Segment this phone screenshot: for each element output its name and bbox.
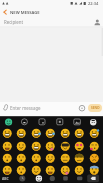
button[interactable]: Recipient (0, 17, 103, 27)
button[interactable] (58, 127, 73, 139)
button[interactable] (37, 117, 49, 128)
button[interactable] (58, 164, 73, 176)
button[interactable]: ABC (0, 174, 13, 183)
button[interactable] (14, 140, 29, 152)
button[interactable] (43, 174, 55, 183)
button[interactable] (43, 152, 58, 164)
button[interactable] (29, 164, 44, 176)
button[interactable] (87, 164, 102, 176)
button[interactable] (87, 127, 102, 139)
button[interactable] (0, 7, 10, 17)
button[interactable] (71, 117, 83, 128)
button[interactable] (1, 102, 9, 116)
button[interactable] (20, 117, 32, 128)
button[interactable] (77, 103, 87, 114)
button[interactable] (58, 140, 73, 152)
button[interactable] (0, 140, 15, 152)
button[interactable] (58, 152, 73, 164)
button[interactable]: SEND (88, 104, 102, 112)
staticText: Recipient (4, 19, 24, 25)
button[interactable] (29, 127, 44, 139)
button[interactable] (0, 164, 15, 176)
button[interactable] (14, 164, 29, 176)
button[interactable] (2, 117, 14, 128)
button[interactable] (72, 140, 87, 152)
staticText: ABC (2, 176, 9, 181)
button[interactable] (72, 152, 87, 164)
button[interactable]: Enter message (9, 102, 77, 116)
button[interactable] (72, 164, 87, 176)
button[interactable] (17, 174, 29, 183)
button[interactable] (14, 152, 29, 164)
button[interactable] (14, 127, 29, 139)
staticText: 22:34 (88, 1, 99, 6)
button[interactable] (54, 117, 66, 128)
button[interactable] (87, 140, 102, 152)
button[interactable] (43, 127, 58, 139)
button[interactable] (29, 152, 44, 164)
button[interactable] (30, 174, 42, 183)
button[interactable] (70, 174, 82, 183)
button[interactable] (84, 174, 96, 183)
button[interactable] (87, 152, 102, 164)
staticText: NEW MESSAGE (10, 10, 40, 16)
button[interactable] (43, 140, 58, 152)
button[interactable] (43, 164, 58, 176)
button[interactable] (0, 152, 15, 164)
staticText: Enter message (10, 105, 41, 111)
staticText: SEND (91, 106, 100, 110)
button[interactable] (57, 174, 69, 183)
button[interactable] (29, 140, 44, 152)
button[interactable] (72, 127, 87, 139)
button[interactable] (88, 117, 100, 128)
button[interactable] (0, 127, 15, 139)
